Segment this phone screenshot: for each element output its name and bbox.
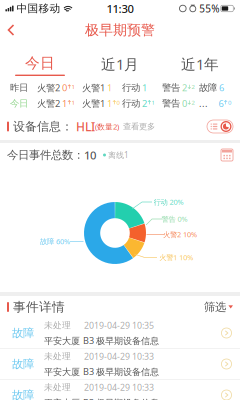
staticText: 0 xyxy=(182,97,187,110)
staticText: 火警1 xyxy=(82,97,105,110)
staticText: 故障 xyxy=(12,357,34,371)
staticText: 2 xyxy=(142,97,147,110)
staticText: 行动 xyxy=(122,82,140,94)
staticText: 近1年 xyxy=(181,54,219,74)
staticText: 未处理 xyxy=(44,320,71,331)
staticText: 平安大厦 B3 极早期设备信息 xyxy=(44,365,159,378)
staticText: 筛选 xyxy=(204,300,226,314)
staticText: 警告 xyxy=(162,97,180,109)
staticText: 查看更多 xyxy=(123,121,155,132)
staticText: 今日 xyxy=(10,97,28,109)
button[interactable]: 故障 xyxy=(0,380,240,400)
staticText: 2019-04-29 10:33 xyxy=(84,381,154,393)
staticText: 中国移动 xyxy=(16,2,60,15)
staticText: HLI xyxy=(76,118,95,135)
staticText: 警告 0% xyxy=(161,214,187,224)
staticText: 故障 60% xyxy=(40,236,70,246)
staticText: 故障 xyxy=(199,97,216,110)
staticText: 10 xyxy=(84,147,96,163)
staticText: 2 xyxy=(192,98,195,107)
staticText: 行动 20% xyxy=(153,197,183,207)
staticText: 极早期预警 xyxy=(85,21,155,39)
staticText: 故障 xyxy=(12,388,34,400)
staticText: 6 xyxy=(218,97,223,110)
staticText: 火警2 xyxy=(37,81,60,94)
staticText: 平安大厦 B3 极早期设备信息 xyxy=(44,396,159,400)
staticText: 2019-04-29 10:35 xyxy=(84,319,154,331)
button[interactable]: 筛选 xyxy=(204,300,233,314)
button[interactable]: 切换视图 xyxy=(207,120,233,133)
button[interactable]: 查看更多 xyxy=(119,121,155,132)
staticText: 2019-04-29 10:33 xyxy=(84,350,154,362)
button[interactable]: 近1月 xyxy=(80,43,160,78)
staticText: 0 xyxy=(62,81,67,94)
staticText: 1 xyxy=(107,81,112,94)
staticText: 2 xyxy=(192,83,195,91)
button[interactable]: 近1年 xyxy=(160,43,240,78)
staticText: 警告 xyxy=(162,82,180,94)
staticText: 11:30 xyxy=(106,1,133,16)
button[interactable]: 故障 xyxy=(0,318,240,348)
staticText: 火警1 xyxy=(82,81,105,94)
staticText: 1 xyxy=(152,98,155,107)
staticText: 设备信息： xyxy=(13,119,73,134)
staticText: 今日事件总数： xyxy=(7,148,84,162)
staticText: 昨日 xyxy=(10,82,28,94)
button[interactable]: 故障 xyxy=(0,349,240,379)
staticText: 1 xyxy=(72,98,75,107)
staticText: 行动 xyxy=(122,97,140,109)
staticText: 故障 xyxy=(199,82,217,94)
staticText: 1 xyxy=(142,81,147,94)
button[interactable]: 选择日期 xyxy=(221,149,233,161)
staticText: 6 xyxy=(219,81,224,94)
staticText: 55% xyxy=(199,2,219,15)
staticText: 今日 xyxy=(25,54,55,72)
staticText: 1 xyxy=(62,97,67,110)
staticText: 火警2 xyxy=(37,97,60,110)
button[interactable]: 今日 xyxy=(0,43,80,78)
staticText: 火警2 10% xyxy=(163,229,197,239)
staticText: 未处理 xyxy=(44,351,71,362)
staticText: 1 xyxy=(72,83,75,91)
staticText: 离线1 xyxy=(108,150,129,160)
staticText: 事件详情 xyxy=(13,299,65,315)
staticText: 平安大厦 B3 极早期设备信息 xyxy=(44,334,159,347)
staticText: 未处理 xyxy=(44,382,71,393)
staticText: (数量2) xyxy=(95,121,119,132)
staticText: 0 xyxy=(228,98,231,107)
staticText: 1 xyxy=(107,97,112,110)
staticText: 2 xyxy=(182,81,187,94)
staticText: 火警1 10% xyxy=(159,252,193,262)
staticText: 故障 xyxy=(12,326,34,340)
staticText: 近1月 xyxy=(101,54,139,74)
staticText: 0 xyxy=(117,98,120,107)
button[interactable]: 返回 xyxy=(0,17,23,43)
